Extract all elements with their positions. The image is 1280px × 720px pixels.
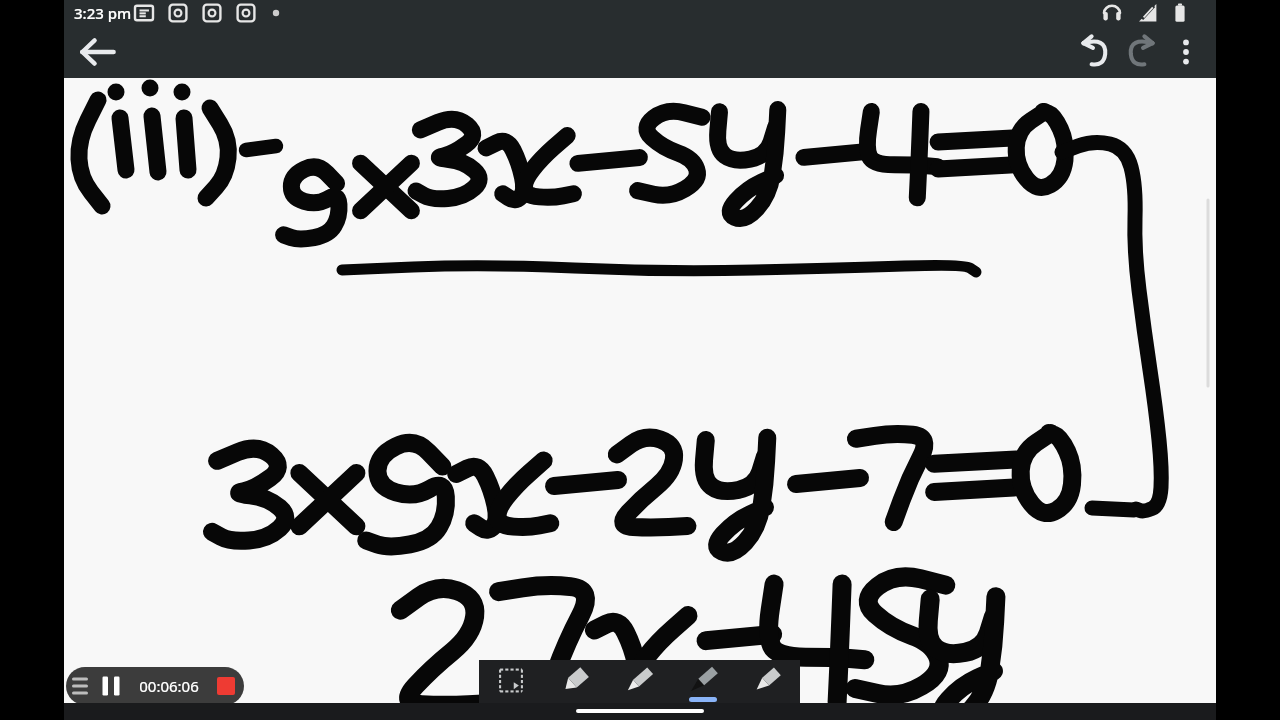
button[interactable]: Move recorder: [66, 667, 94, 705]
button[interactable]: Stop recording: [210, 667, 242, 705]
button[interactable]: Home: [576, 709, 704, 713]
button[interactable]: Pause recording: [94, 667, 128, 705]
button[interactable]: Undo: [1072, 29, 1118, 75]
button[interactable]: Move recorder: [66, 667, 244, 705]
button[interactable]: Highlighter: [735, 660, 799, 703]
button[interactable]: Eraser: [543, 660, 607, 703]
button[interactable]: Select: [479, 660, 543, 703]
button[interactable]: Pen: [607, 660, 671, 703]
button[interactable]: More options: [1164, 30, 1208, 74]
button[interactable]: Back: [74, 28, 122, 76]
staticText: 3:23 pm: [74, 3, 132, 23]
staticText: 00:06:06: [128, 676, 210, 696]
button[interactable]: Redo: [1118, 29, 1164, 75]
button[interactable]: Marker: [671, 660, 735, 703]
